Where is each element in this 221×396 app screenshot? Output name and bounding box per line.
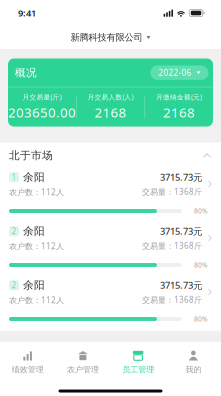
- staticText: 1: [11, 172, 16, 182]
- staticText: 余阳: [23, 171, 45, 184]
- staticText: 余阳: [23, 279, 45, 292]
- staticText: 交易量：1368斤: [142, 240, 202, 251]
- staticText: 月交易量(斤): [22, 92, 61, 101]
- button[interactable]: 收起: [199, 149, 215, 162]
- button[interactable]: 农户管理: [55, 341, 110, 383]
- staticText: 绩效管理: [12, 365, 44, 374]
- staticText: 月缴纳金额(元): [156, 92, 202, 101]
- button[interactable]: 新腾科技有限公司: [0, 26, 221, 49]
- staticText: 203650.00: [8, 103, 76, 121]
- staticText: 农户数：112人: [9, 241, 64, 251]
- staticText: 北于市场: [9, 149, 53, 162]
- staticText: 2: [11, 226, 16, 236]
- button[interactable]: 绩效管理: [0, 341, 55, 383]
- staticText: 80%: [194, 207, 208, 215]
- staticText: 概况: [15, 66, 37, 79]
- staticText: 80%: [194, 315, 208, 323]
- staticText: 月交易人数(人): [87, 92, 133, 101]
- staticText: 2: [11, 280, 16, 290]
- button[interactable]: 2: [0, 276, 221, 330]
- staticText: 农户管理: [67, 365, 99, 374]
- staticText: 9:41: [18, 7, 36, 19]
- button[interactable]: 我的: [166, 341, 221, 383]
- staticText: 3715.73元: [160, 171, 202, 183]
- staticText: 农户数：112人: [9, 295, 64, 305]
- staticText: 80%: [194, 261, 208, 269]
- staticText: 2168: [163, 103, 195, 121]
- button[interactable]: 2: [0, 222, 221, 276]
- staticText: 员工管理: [122, 365, 154, 374]
- staticText: 我的: [185, 365, 201, 374]
- button[interactable]: 2022-06: [150, 65, 208, 80]
- staticText: 农户数：112人: [9, 187, 64, 197]
- staticText: 2168: [94, 103, 126, 121]
- button[interactable]: 1: [0, 168, 221, 222]
- staticText: 交易量：1368斤: [142, 186, 202, 197]
- staticText: 2022-06: [158, 67, 191, 78]
- staticText: 新腾科技有限公司: [70, 32, 142, 43]
- staticText: 3715.73元: [160, 279, 202, 291]
- staticText: 交易量：1368斤: [142, 294, 202, 305]
- staticText: 3715.73元: [160, 225, 202, 237]
- button[interactable]: 员工管理: [110, 341, 166, 383]
- staticText: 余阳: [23, 225, 45, 238]
